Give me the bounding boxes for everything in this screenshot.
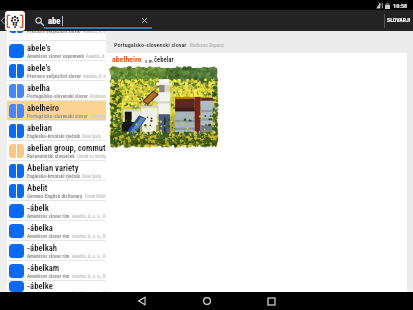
staticText: Amebisov slovar sopomenk — [27, 53, 84, 59]
staticText: Presisov večjezični slovar — [27, 31, 81, 34]
button[interactable]: -ábelkam — [7, 261, 113, 280]
button[interactable]: abelha — [7, 81, 113, 100]
staticText: Abelit — [27, 183, 48, 193]
button[interactable]: abelian group, commut... — [7, 141, 113, 160]
button[interactable]: Dictionary app — [5, 11, 25, 31]
staticText: abele's — [27, 63, 51, 73]
staticText: Amebisov slovar rim — [27, 213, 70, 219]
staticText: Amebis, d. o. o., Ka... — [72, 274, 112, 279]
button[interactable]: Clear query — [138, 14, 151, 27]
staticText: čebelar — [154, 56, 174, 64]
button[interactable]: Abelit — [7, 181, 113, 200]
staticText: abe — [48, 16, 61, 26]
button[interactable]: abele's — [7, 41, 113, 60]
staticText: Portugalsko-slovenski slovar — [114, 41, 187, 48]
staticText: Dean Ipsly — [82, 174, 102, 179]
button[interactable]: Back — [133, 292, 150, 310]
button[interactable]: Abelian variety — [7, 161, 113, 180]
staticText: SLOVARJI — [387, 17, 411, 24]
button[interactable]: -ábelkah — [7, 241, 113, 260]
staticText: -ábelka — [27, 223, 53, 233]
button[interactable]: -ábelke — [7, 281, 113, 292]
staticText: abelian group, commut... — [27, 143, 113, 153]
button[interactable]: abelheiro — [7, 101, 113, 120]
staticText: German-English dictionary — [27, 193, 83, 199]
staticText: abelian — [27, 123, 53, 133]
staticText: Amebis, d. o. o... — [83, 31, 113, 34]
staticText: Amebis, d. o. o., Ka... — [72, 254, 112, 259]
staticText: Amebis, d. o. o., Ka... — [72, 291, 112, 292]
staticText: abelheiro — [112, 55, 142, 64]
staticText: abele's — [27, 43, 51, 53]
staticText: -ábelk — [27, 203, 49, 213]
button[interactable]: Home — [198, 292, 215, 310]
staticText: Amebisov slovar rim — [27, 253, 70, 259]
staticText: s.m — [145, 58, 153, 64]
button[interactable]: Search — [34, 16, 44, 26]
staticText: Radovan... — [90, 94, 110, 99]
staticText: -ábelke — [27, 281, 53, 291]
staticText: Presisov večjezični slovar — [27, 73, 81, 79]
button[interactable]: -ábelk — [7, 201, 113, 220]
staticText: Dean Ipsly — [82, 134, 102, 139]
staticText: Amebis, d. o. o., Ka... — [72, 234, 112, 239]
staticText: Odsek za intelig... — [77, 154, 111, 159]
staticText: Portugalsko-slovenski slovar — [27, 93, 88, 99]
button[interactable]: -ábelka — [7, 221, 113, 240]
staticText: Amebis, d. o. o... — [83, 74, 113, 79]
staticText: 10:58 — [393, 2, 408, 9]
staticText: abelha — [27, 83, 50, 93]
button[interactable]: Recent apps — [263, 292, 280, 310]
staticText: Englesko-hrvatski rječnik — [27, 173, 80, 179]
button[interactable]: abele's — [7, 61, 113, 80]
staticText: Amebis, d. o... — [86, 54, 113, 59]
staticText: -ábelkah — [27, 243, 58, 253]
staticText: -ábelkam — [27, 263, 60, 273]
button[interactable]: Navigate up — [0, 10, 6, 31]
staticText: Radovan... — [90, 114, 110, 119]
button[interactable]: abelian — [7, 121, 113, 140]
staticText: Amebisov slovar rim — [27, 233, 70, 239]
button[interactable]: SLOVARJI — [385, 10, 413, 31]
staticText: Englesko-hrvatski rječnik — [27, 133, 80, 139]
staticText: Abelian variety — [27, 163, 79, 173]
staticText: Amebis, d. o. o., Ka... — [72, 214, 112, 219]
staticText: Amebisov slovar rim — [27, 273, 70, 279]
staticText: abelheiro — [27, 103, 60, 113]
staticText: Radovan Zupanc — [190, 42, 225, 48]
staticText: Računalniški slovarček — [27, 153, 75, 159]
staticText: Portugalsko-slovenski slovar — [27, 113, 88, 119]
staticText: Frank Richter — [85, 194, 110, 199]
